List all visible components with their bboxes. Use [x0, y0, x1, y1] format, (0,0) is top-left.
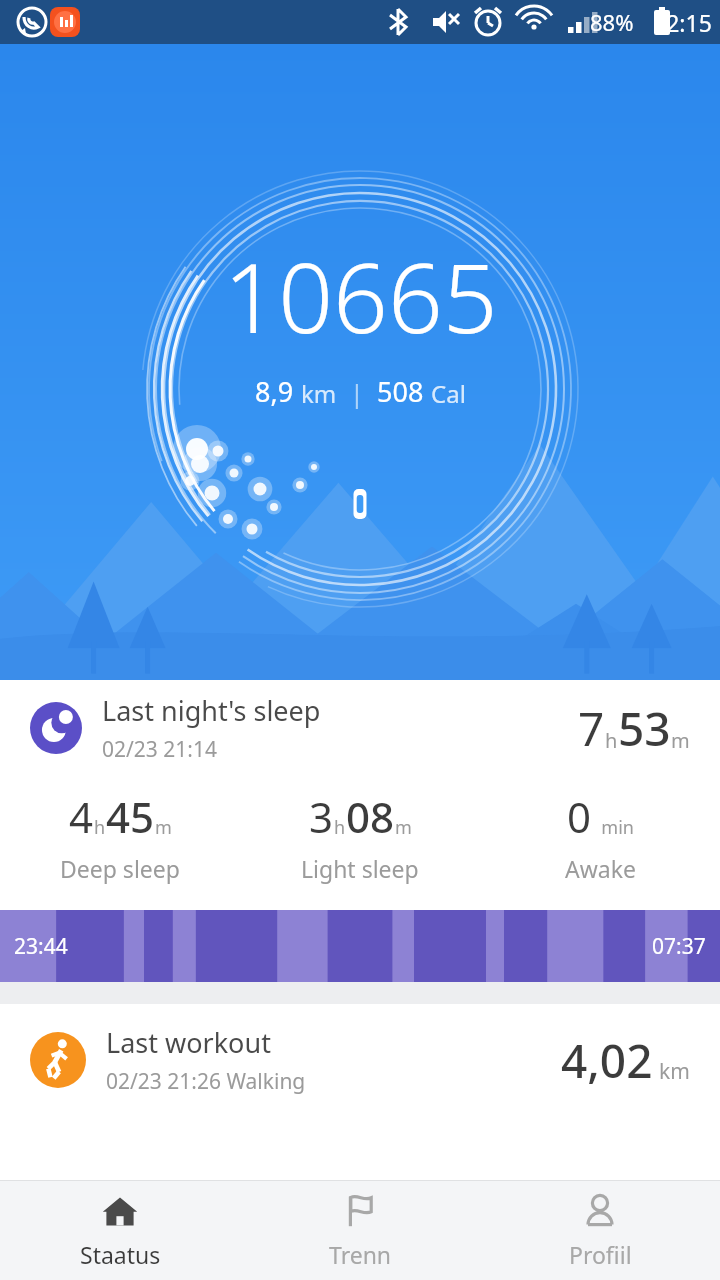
staticText: Cal: [431, 377, 466, 410]
staticText: min: [592, 815, 634, 840]
staticText: |: [350, 376, 364, 410]
staticText: 4,02: [561, 1029, 653, 1092]
staticText: 02/23 21:14: [102, 735, 217, 764]
staticText: 08: [346, 788, 395, 845]
staticText: m: [671, 727, 690, 754]
staticText: 88%: [590, 7, 634, 37]
staticText: km: [301, 377, 337, 410]
staticText: Light sleep: [301, 853, 419, 884]
staticText: 8,9: [255, 373, 294, 410]
button[interactable]: Staatus: [0, 1181, 240, 1280]
staticText: h: [334, 815, 346, 840]
staticText: Profiil: [569, 1239, 632, 1270]
staticText: 23:44: [14, 932, 68, 961]
staticText: Staatus: [80, 1239, 161, 1270]
staticText: 7: [578, 697, 605, 760]
staticText: m: [155, 815, 172, 840]
button[interactable]: Last workout: [0, 1004, 720, 1116]
staticText: km: [659, 1057, 690, 1086]
staticText: 0: [567, 788, 592, 845]
staticText: h: [94, 815, 106, 840]
staticText: 22:15: [653, 7, 712, 38]
staticText: 45: [106, 788, 155, 845]
staticText: 02/23 21:26 Walking: [106, 1067, 306, 1096]
staticText: Trenn: [329, 1239, 392, 1270]
staticText: Last workout: [106, 1024, 271, 1061]
staticText: Deep sleep: [60, 853, 180, 884]
staticText: 508: [377, 373, 424, 410]
staticText: 3: [309, 788, 334, 845]
staticText: 4: [69, 788, 94, 845]
staticText: Awake: [565, 853, 636, 884]
button[interactable]: Last night's sleep: [0, 680, 720, 982]
button[interactable]: Profiil: [480, 1181, 720, 1280]
staticText: Last night's sleep: [102, 692, 321, 729]
staticText: 07:37: [652, 932, 706, 961]
staticText: m: [395, 815, 412, 840]
staticText: h: [605, 727, 618, 754]
staticText: 53: [618, 697, 671, 760]
button[interactable]: Trenn: [240, 1181, 480, 1280]
staticText: 10665: [223, 230, 498, 361]
